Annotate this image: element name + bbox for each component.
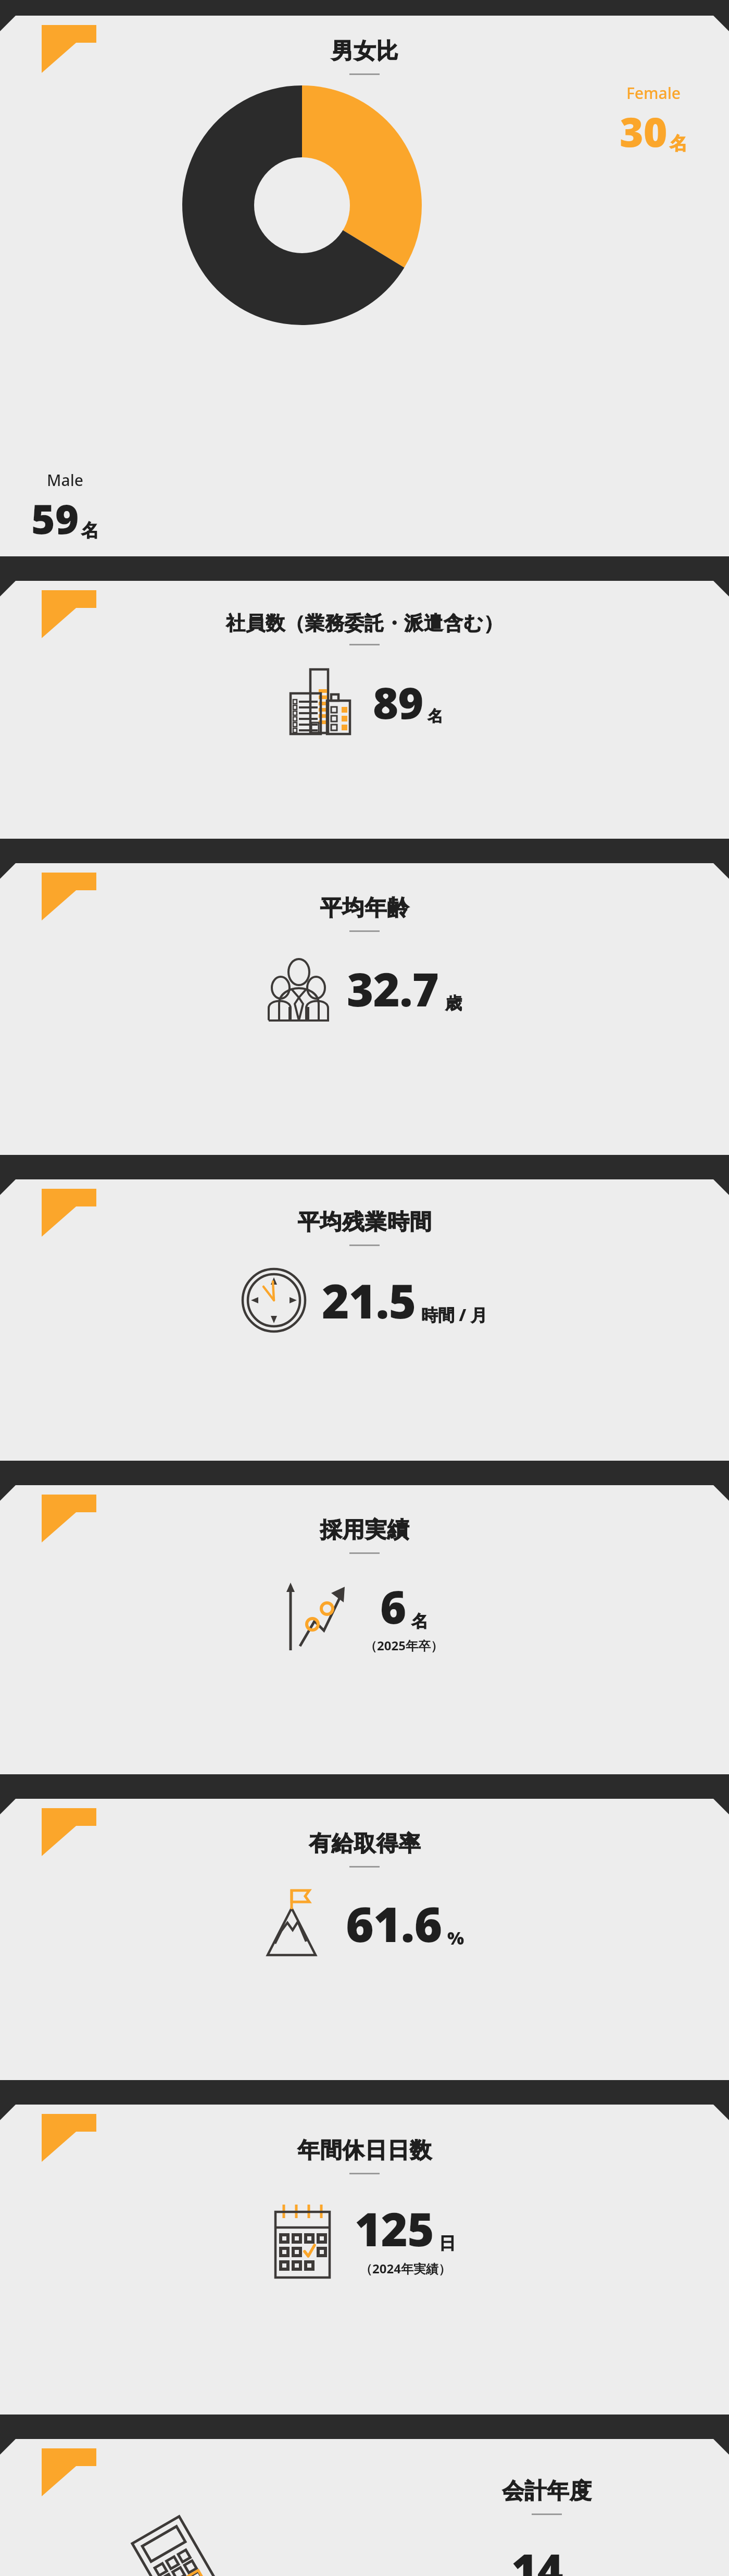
- staticText: 歳: [445, 993, 462, 1014]
- staticText: 名: [411, 1611, 428, 1632]
- staticText: 会計年度: [502, 2478, 592, 2505]
- staticText: 採用実績: [320, 1516, 409, 1544]
- staticText: Male: [47, 469, 84, 491]
- staticText: 32.7: [347, 957, 439, 1020]
- other: Buildings: [286, 666, 357, 737]
- staticText: 平均年齢: [320, 894, 409, 922]
- staticText: 61.6: [346, 1891, 442, 1956]
- staticText: 平均残業時間: [297, 1209, 432, 1236]
- staticText: 名: [670, 132, 687, 155]
- staticText: 125: [355, 2197, 434, 2260]
- staticText: 名: [428, 706, 443, 726]
- button[interactable]: 年間休日日数: [0, 2105, 729, 2415]
- staticText: （2025年卒）: [364, 1637, 443, 1654]
- staticText: 時間 / 月: [421, 1303, 487, 1326]
- staticText: 男女比: [331, 38, 398, 65]
- staticText: 6: [380, 1576, 406, 1637]
- other: Growth chart: [286, 1583, 351, 1647]
- button[interactable]: 平均年齢: [0, 863, 729, 1155]
- staticText: %: [447, 1926, 464, 1950]
- button[interactable]: 有給取得率: [0, 1799, 729, 2080]
- other: Mountain with flag: [265, 1889, 332, 1957]
- button[interactable]: 社員数（業務委託・派遣含む）: [0, 581, 729, 839]
- staticText: 名: [81, 519, 99, 542]
- staticText: 社員数（業務委託・派遣含む）: [226, 611, 504, 636]
- staticText: Female: [626, 82, 681, 104]
- staticText: 有給取得率: [309, 1830, 421, 1858]
- button[interactable]: Calculator: [0, 2439, 729, 2576]
- staticText: 30: [620, 104, 668, 159]
- staticText: 89: [373, 672, 423, 731]
- other: Calendar: [273, 2205, 339, 2270]
- staticText: 日: [439, 2233, 456, 2254]
- staticText: （2024年実績）: [360, 2260, 451, 2277]
- staticText: 21.5: [322, 1268, 416, 1333]
- other: Clock: [242, 1267, 308, 1334]
- other: Calculator: [143, 2525, 221, 2576]
- other: Employees: [268, 956, 333, 1022]
- button[interactable]: 平均残業時間: [0, 1179, 729, 1461]
- button[interactable]: 男女比: [0, 16, 729, 556]
- button[interactable]: 採用実績: [0, 1485, 729, 1774]
- staticText: 14: [511, 2539, 563, 2576]
- staticText: 59: [31, 491, 79, 546]
- staticText: 年間休日日数: [297, 2137, 432, 2164]
